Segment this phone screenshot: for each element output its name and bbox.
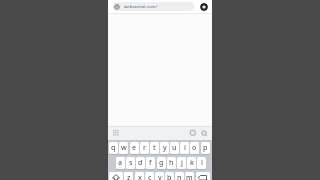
button[interactable]: j [177,157,186,169]
button[interactable] [188,128,197,138]
staticText: y [163,143,167,153]
button[interactable]: b [165,172,174,180]
staticText: j [181,158,183,168]
button[interactable]: k [187,157,196,169]
button[interactable]: d [136,157,145,169]
staticText: b [167,173,172,180]
button[interactable]: y [160,142,169,154]
button[interactable]: z [124,172,133,180]
staticText: e [132,143,137,153]
button[interactable]: e [130,142,139,154]
staticText: o [192,143,197,153]
button[interactable]: a [116,157,125,169]
staticText: l [201,158,203,168]
staticText: g [159,158,164,168]
staticText: m [186,173,193,180]
button[interactable]: i [180,142,189,154]
button[interactable] [196,172,210,180]
staticText: v [158,173,162,180]
button[interactable]: s [126,157,135,169]
staticText: r [143,143,146,153]
button[interactable]: p [201,142,210,154]
button[interactable]: w [119,142,128,154]
staticText: x [138,173,142,180]
staticText: webcannot.com/ [124,4,157,10]
button[interactable] [109,172,123,180]
staticText: f [149,158,152,168]
button[interactable]: q [109,142,118,154]
button[interactable] [113,2,194,11]
staticText: w [121,143,127,153]
staticText: n [177,173,182,180]
button[interactable]: c [145,172,154,180]
staticText: t [153,143,156,153]
button[interactable]: v [155,172,164,180]
button[interactable]: r [140,142,149,154]
staticText: s [129,158,133,168]
staticText: h [169,158,174,168]
staticText: u [172,143,177,153]
button[interactable] [199,128,209,138]
button[interactable]: l [197,157,206,169]
button[interactable]: o [190,142,199,154]
staticText: p [203,143,208,153]
staticText: i [184,143,186,153]
button[interactable]: t [150,142,159,154]
button[interactable]: h [167,157,176,169]
staticText: k [190,158,194,168]
button[interactable]: x [135,172,144,180]
staticText: z [127,173,131,180]
staticText: a [118,158,123,168]
staticText: c [148,173,152,180]
button[interactable] [111,128,121,138]
button[interactable]: n [175,172,184,180]
button[interactable] [200,3,208,11]
button[interactable]: g [157,157,166,169]
staticText: d [138,158,143,168]
button[interactable]: f [146,157,155,169]
button[interactable]: m [185,172,194,180]
staticText: q [111,143,116,153]
button[interactable]: u [170,142,179,154]
